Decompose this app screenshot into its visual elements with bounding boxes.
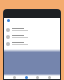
button[interactable] [4,26,60,33]
button[interactable]: Tab 3 [48,76,51,79]
button[interactable]: Tab 1 [25,76,28,79]
button[interactable]: Tab 2 [36,76,39,79]
button[interactable]: Tab 0 [13,76,16,79]
button[interactable] [4,33,60,40]
button[interactable] [4,40,60,47]
